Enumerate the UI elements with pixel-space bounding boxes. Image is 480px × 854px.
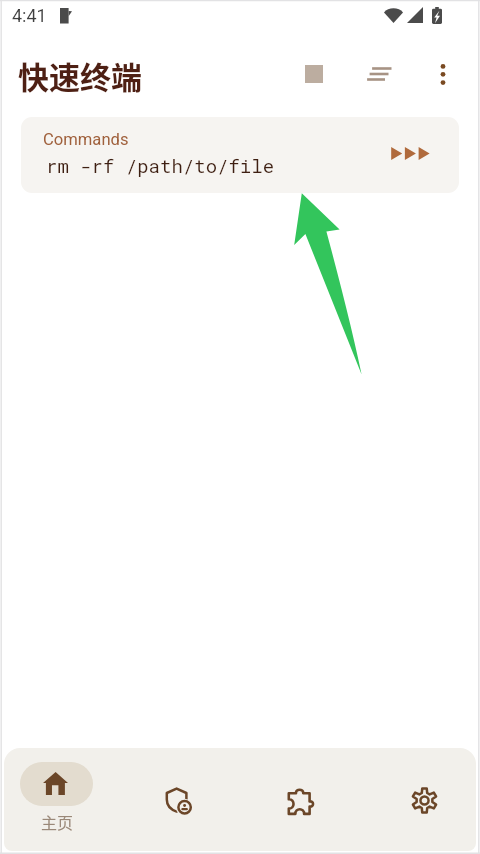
staticText: 快速终端: [18, 53, 142, 98]
staticText: 主页: [40, 810, 74, 833]
button[interactable]: Settings: [388, 764, 460, 836]
staticText: 4:41: [12, 5, 47, 26]
staticText: Commands: [43, 130, 129, 149]
button[interactable]: 主页: [12, 756, 102, 836]
button[interactable]: Commands: [21, 117, 459, 193]
button[interactable]: Logs: [355, 50, 403, 98]
staticText: rm -rf /path/to/file: [46, 153, 275, 178]
button[interactable]: Extensions: [265, 767, 337, 839]
button[interactable]: More options: [419, 50, 467, 98]
button[interactable]: Stop: [290, 50, 338, 98]
button[interactable]: Security: [144, 765, 216, 837]
